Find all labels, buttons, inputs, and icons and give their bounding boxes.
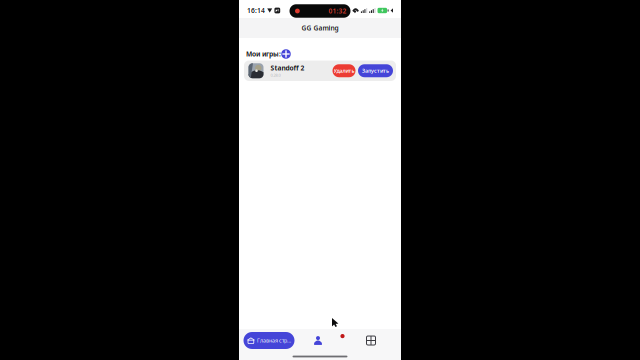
staticText: Запустить bbox=[362, 67, 389, 74]
staticText: 01:32 bbox=[328, 7, 346, 15]
staticText: 0.28.0 bbox=[270, 73, 280, 78]
button[interactable]: Запустить bbox=[358, 64, 393, 77]
button[interactable]: Профиль bbox=[308, 332, 328, 349]
staticText: Standoff 2 bbox=[270, 64, 304, 72]
staticText: Главная стр… bbox=[257, 337, 291, 344]
button[interactable]: Каталог bbox=[361, 332, 381, 349]
staticText: GG Gaming bbox=[301, 24, 338, 32]
button[interactable]: Добавить игру bbox=[281, 49, 291, 59]
button[interactable]: Удалить bbox=[332, 64, 355, 77]
button[interactable]: Главная стр… bbox=[243, 332, 294, 349]
button[interactable]: Уведомления bbox=[335, 330, 349, 351]
staticText: Мои игры: bbox=[246, 50, 281, 58]
staticText: 16:14 bbox=[247, 6, 265, 15]
staticText: Удалить bbox=[333, 67, 354, 74]
